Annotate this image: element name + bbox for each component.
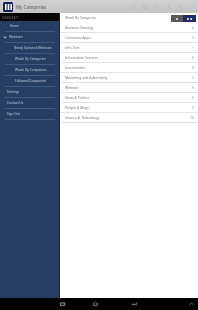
button[interactable]: Marketing and Advertising [60,73,198,83]
button[interactable]: Info-Tech [60,43,198,53]
button[interactable]: Watch By Companies [0,65,59,76]
button[interactable]: Back [128,298,141,310]
staticText: Watch By Categories [65,16,96,20]
staticText: Consumer Apps [65,35,91,40]
staticText: Contact Us [7,101,24,105]
staticText: Watch By Companies [15,68,47,72]
staticText: 4 [192,25,194,30]
staticText: People & Blogs [65,105,89,110]
button[interactable]: Webinar [60,83,198,93]
staticText: 6 [192,55,194,60]
staticText: Watch By Categories [15,57,46,61]
button[interactable]: Information Services [60,53,198,63]
staticText: 2 [192,75,194,80]
staticText: 9 [192,95,194,100]
button[interactable]: Settings [0,87,59,98]
button[interactable]: Grid view [183,15,196,22]
button[interactable]: Science & Technology [60,113,198,123]
staticText: 14 [190,115,194,120]
staticText: 2 [192,105,194,110]
button[interactable]: News & Politics [60,93,198,103]
staticText: Webinar [65,85,79,90]
button[interactable]: Home [0,21,59,32]
staticText: Newly Updated Webinars [14,46,52,50]
button[interactable]: Home [127,0,139,13]
button[interactable]: Recent apps [56,298,69,310]
staticText: News & Politics [65,95,90,100]
staticText: Followed Companies [15,79,46,83]
staticText: My Categories [16,4,47,10]
staticText: Investments [65,65,85,70]
button[interactable]: Business Strategy [60,23,198,33]
button[interactable]: Profile [163,0,175,13]
button[interactable]: Consumer Apps [60,33,198,43]
button[interactable]: Home [89,298,102,310]
staticText: Information Services [65,55,98,60]
staticText: Science & Technology [65,115,100,120]
staticText: Settings [7,90,20,94]
staticText: SANJEET [2,15,19,20]
staticText: Home [10,24,20,28]
button[interactable]: People & Blogs [60,103,198,113]
button[interactable]: Open navigation drawer [3,2,13,12]
button[interactable]: Search [175,0,187,13]
button[interactable]: Investments [60,63,198,73]
button[interactable]: Watch By Categories [0,54,59,65]
staticText: 6 [192,65,194,70]
button[interactable]: Newly Updated Webinars [0,43,59,54]
button[interactable]: Expand status bar [185,298,198,310]
button[interactable]: Messages [139,0,151,13]
staticText: 9 [192,85,194,90]
staticText: Sign Out [7,112,20,116]
staticText: 1 [192,45,194,50]
button[interactable]: Webinars [0,32,59,43]
button[interactable]: Contact Us [0,98,59,109]
staticText: 3 [192,35,194,40]
button[interactable]: Favorites [151,0,163,13]
staticText: Marketing and Advertising [65,75,108,80]
button[interactable]: List view [171,15,183,22]
staticText: Webinars [9,35,24,39]
staticText: Business Strategy [65,25,94,30]
button[interactable]: Followed Companies [0,76,59,87]
staticText: Info-Tech [65,45,80,50]
button[interactable]: Sign Out [0,109,59,120]
